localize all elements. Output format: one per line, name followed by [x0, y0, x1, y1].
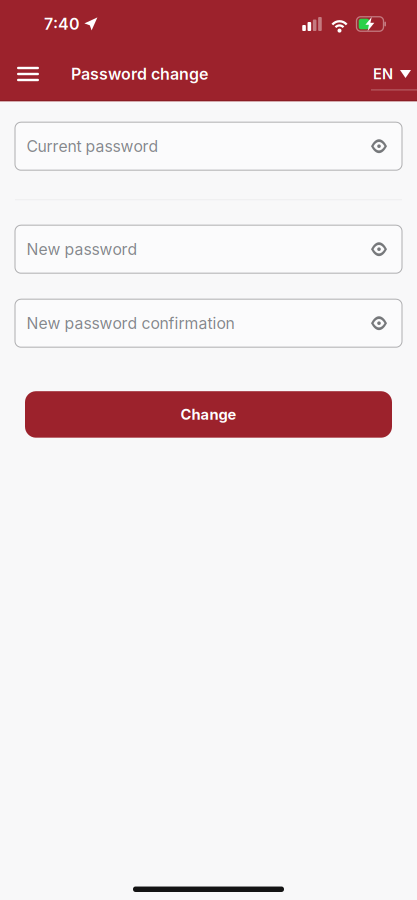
staticText: Current password	[26, 137, 158, 156]
button[interactable]: Language EN	[355, 48, 417, 100]
button[interactable]: Menu	[0, 48, 71, 100]
staticText: New password	[26, 240, 137, 259]
button[interactable]: Current password	[15, 122, 402, 170]
button[interactable]: New password	[15, 225, 402, 273]
button[interactable]: New password confirmation	[15, 299, 402, 347]
staticText: EN	[373, 65, 393, 83]
staticText: Password change	[71, 64, 208, 84]
staticText: Change	[180, 406, 236, 423]
button[interactable]: Change	[15, 391, 402, 438]
staticText: 7:40	[44, 14, 80, 34]
staticText: New password confirmation	[26, 314, 234, 333]
